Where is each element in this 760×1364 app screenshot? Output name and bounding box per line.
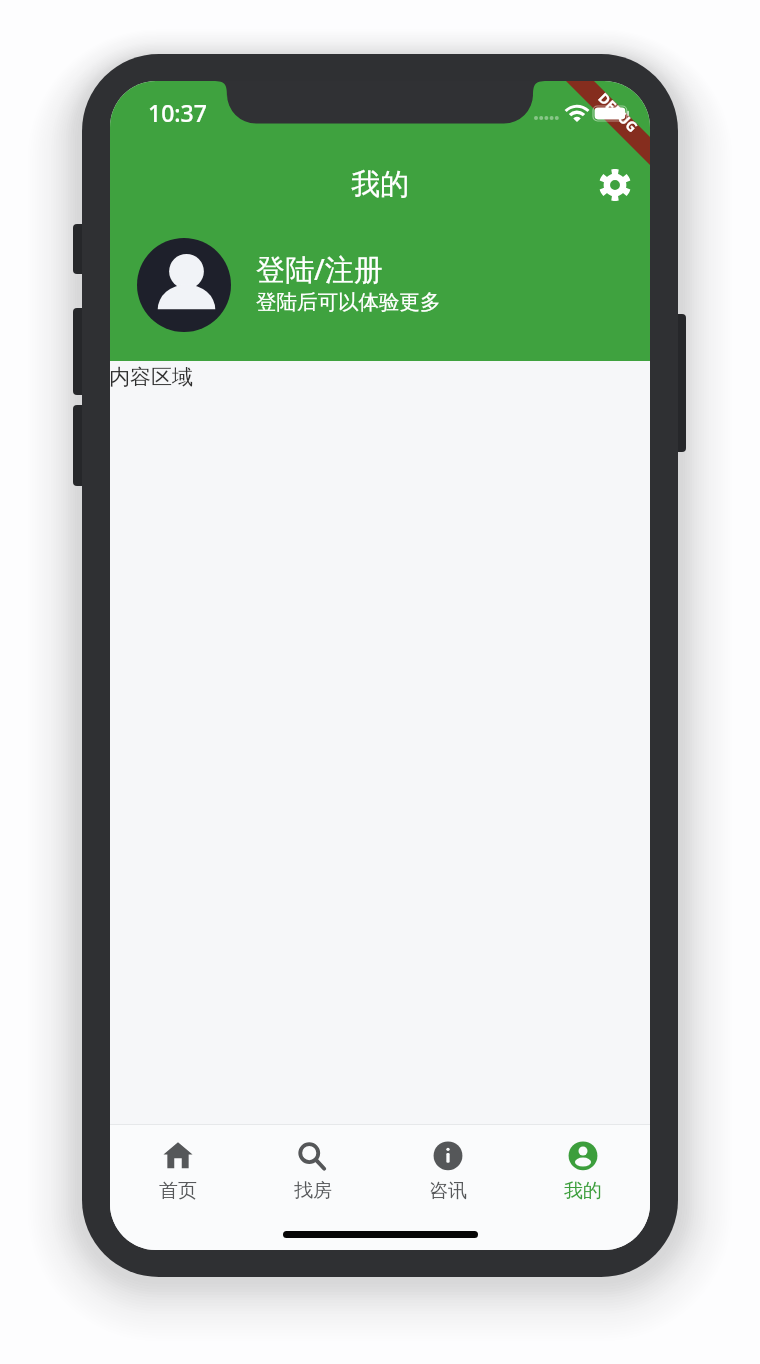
staticText: 登陆/注册	[256, 249, 383, 289]
staticText: 我的	[564, 1179, 602, 1203]
staticText: 找房	[294, 1179, 332, 1203]
button[interactable]: 我的	[515, 1125, 650, 1219]
button[interactable]: 咨讯	[380, 1125, 515, 1219]
staticText: 10:37	[148, 97, 207, 128]
button[interactable]: Settings	[589, 159, 641, 211]
staticText: 登陆后可以体验更多	[256, 289, 441, 315]
staticText: DEBUG	[594, 88, 643, 137]
button[interactable]: 找房	[245, 1125, 380, 1219]
staticText: 内容区域	[110, 364, 193, 390]
button[interactable]: 登陆/注册	[110, 223, 650, 347]
staticText: 首页	[159, 1179, 197, 1203]
staticText: 我的	[351, 166, 409, 203]
staticText: 咨讯	[429, 1179, 467, 1203]
button[interactable]: 首页	[110, 1125, 245, 1219]
